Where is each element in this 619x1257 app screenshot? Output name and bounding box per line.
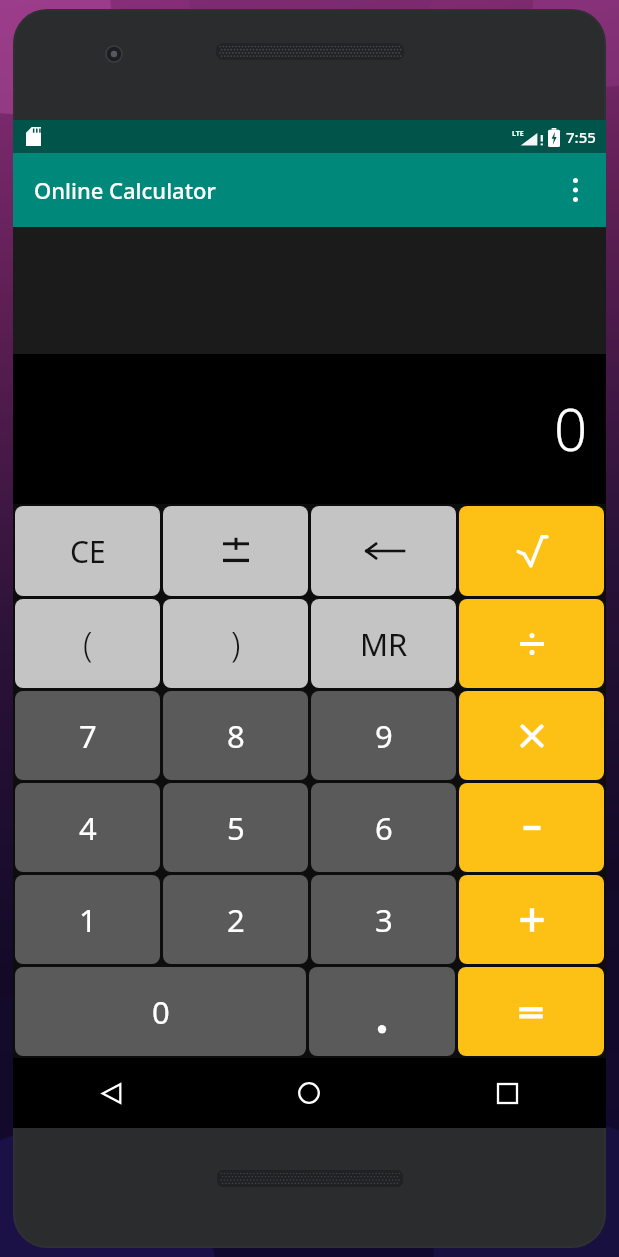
staticText: CE <box>70 531 106 572</box>
button[interactable]: 5 <box>163 783 308 872</box>
staticText: 2 <box>227 899 245 941</box>
button[interactable]: Plus <box>459 875 604 964</box>
staticText: ( <box>83 621 93 667</box>
button[interactable]: 0 <box>15 967 306 1056</box>
button[interactable]: ) <box>163 599 308 688</box>
button[interactable]: Back <box>13 1058 210 1128</box>
button[interactable]: MR <box>311 599 456 688</box>
staticText: 9 <box>375 715 393 757</box>
button[interactable]: 2 <box>163 875 308 964</box>
staticText: 0 <box>152 991 170 1033</box>
staticText: 1 <box>79 899 97 941</box>
staticText: 7:55 <box>566 127 596 147</box>
staticText: 4 <box>79 807 97 849</box>
button[interactable]: Home <box>210 1058 408 1128</box>
staticText: 8 <box>227 715 245 757</box>
button[interactable]: Backspace <box>311 506 456 596</box>
button[interactable]: 7 <box>15 691 160 780</box>
staticText: 3 <box>375 899 393 941</box>
staticText: 5 <box>227 807 245 849</box>
button[interactable]: Minus <box>459 783 604 872</box>
staticText: ) <box>231 621 241 667</box>
staticText: 6 <box>375 807 393 849</box>
staticText: MR <box>360 623 408 665</box>
button[interactable]: ( <box>15 599 160 688</box>
staticText: Online Calculator <box>34 175 216 205</box>
button[interactable]: Decimal point <box>309 967 455 1056</box>
button[interactable]: 8 <box>163 691 308 780</box>
staticText: LTE <box>512 129 524 139</box>
staticText: 7 <box>79 715 97 757</box>
button[interactable]: Multiply <box>459 691 604 780</box>
button[interactable]: CE <box>15 506 160 596</box>
button[interactable]: Square root <box>459 506 604 596</box>
button[interactable]: 1 <box>15 875 160 964</box>
button[interactable]: Plus minus <box>163 506 308 596</box>
button[interactable]: Recent apps <box>408 1058 606 1128</box>
button[interactable]: 6 <box>311 783 456 872</box>
button[interactable]: 3 <box>311 875 456 964</box>
button[interactable]: Equals <box>458 967 604 1056</box>
button[interactable]: 4 <box>15 783 160 872</box>
staticText: 0 <box>553 389 587 468</box>
button[interactable]: Divide <box>459 599 604 688</box>
button[interactable]: More options <box>552 167 598 213</box>
button[interactable]: 9 <box>311 691 456 780</box>
